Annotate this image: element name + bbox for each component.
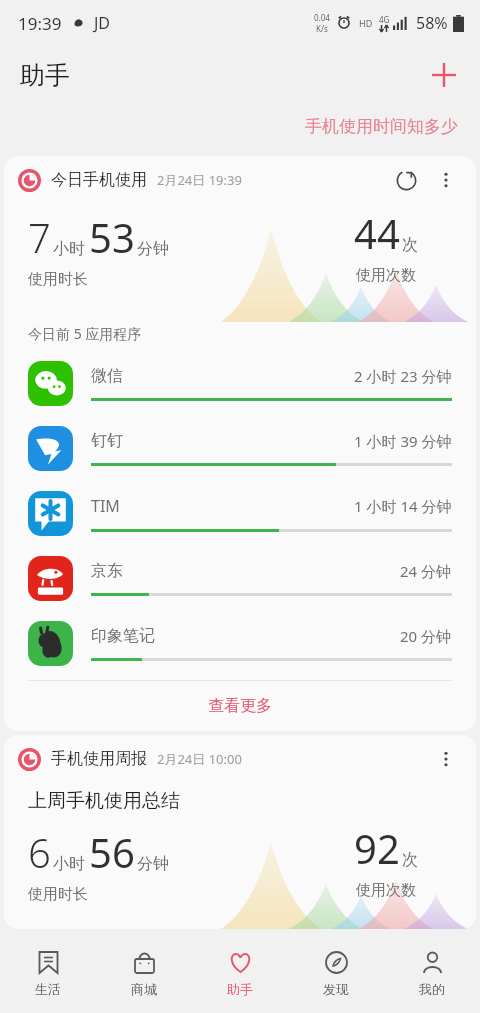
staticText: 今日手机使用 <box>51 170 147 190</box>
button[interactable]: Refresh <box>386 160 426 200</box>
staticText: 1 小时 14 分钟 <box>354 496 452 516</box>
staticText: 19:39 <box>18 12 62 35</box>
staticText: 使用次数 <box>356 266 416 285</box>
button[interactable]: 商城 <box>96 940 192 1013</box>
staticText: 20 分钟 <box>400 626 452 646</box>
staticText: 次 <box>402 235 418 255</box>
button[interactable]: Add <box>422 53 466 97</box>
staticText: 生活 <box>35 981 61 997</box>
button[interactable]: 发现 <box>288 940 384 1013</box>
staticText: 2月24日 10:00 <box>157 750 242 768</box>
button[interactable]: More options <box>426 739 466 779</box>
staticText: 京东 <box>91 561 123 581</box>
staticText: 6 <box>28 825 51 879</box>
staticText: HD <box>359 17 373 29</box>
staticText: TIM <box>91 495 120 517</box>
staticText: 钉钉 <box>91 431 123 451</box>
button[interactable]: 微信 <box>4 351 476 416</box>
staticText: 4G <box>379 14 390 25</box>
staticText: 小时 <box>53 854 85 874</box>
staticText: 助手 <box>20 60 70 91</box>
staticText: 58% <box>416 12 448 34</box>
staticText: 2月24日 19:39 <box>157 171 242 189</box>
button[interactable]: 我的 <box>384 940 480 1013</box>
staticText: 微信 <box>91 366 123 386</box>
staticText: 我的 <box>419 981 445 997</box>
staticText: JD <box>94 12 111 34</box>
button[interactable]: 生活 <box>0 940 96 1013</box>
button[interactable]: TIM <box>4 481 476 546</box>
staticText: 今日前 5 应用程序 <box>28 324 142 343</box>
staticText: 助手 <box>227 981 253 997</box>
button[interactable]: 钉钉 <box>4 416 476 481</box>
staticText: 44 <box>354 206 400 260</box>
staticText: 上周手机使用总结 <box>28 789 180 813</box>
staticText: 发现 <box>323 981 349 997</box>
staticText: 24 分钟 <box>400 561 452 581</box>
button[interactable]: More options <box>426 160 466 200</box>
staticText: 7 <box>28 210 51 264</box>
staticText: 印象笔记 <box>91 626 155 646</box>
staticText: 手机使用周报 <box>51 749 147 769</box>
staticText: 次 <box>402 850 418 870</box>
button[interactable]: 查看更多 <box>4 681 476 731</box>
staticText: 分钟 <box>137 854 169 874</box>
staticText: 小时 <box>53 239 85 259</box>
staticText: 使用时长 <box>28 270 88 289</box>
staticText: 查看更多 <box>208 696 272 716</box>
staticText: 使用时长 <box>28 885 88 904</box>
staticText: 1 小时 39 分钟 <box>354 431 452 451</box>
staticText: 分钟 <box>137 239 169 259</box>
staticText: K/s <box>316 23 328 34</box>
button[interactable]: 京东 <box>4 546 476 611</box>
button[interactable]: 印象笔记 <box>4 611 476 676</box>
staticText: 2 小时 23 分钟 <box>354 366 452 386</box>
staticText: 商城 <box>131 981 157 997</box>
staticText: 92 <box>354 821 400 875</box>
staticText: 0.04 <box>314 12 330 23</box>
staticText: 使用次数 <box>356 881 416 900</box>
staticText: 手机使用时间知多少 <box>305 116 458 137</box>
button[interactable]: 助手 <box>192 940 288 1013</box>
staticText: 56 <box>89 825 135 879</box>
staticText: 53 <box>89 210 135 264</box>
